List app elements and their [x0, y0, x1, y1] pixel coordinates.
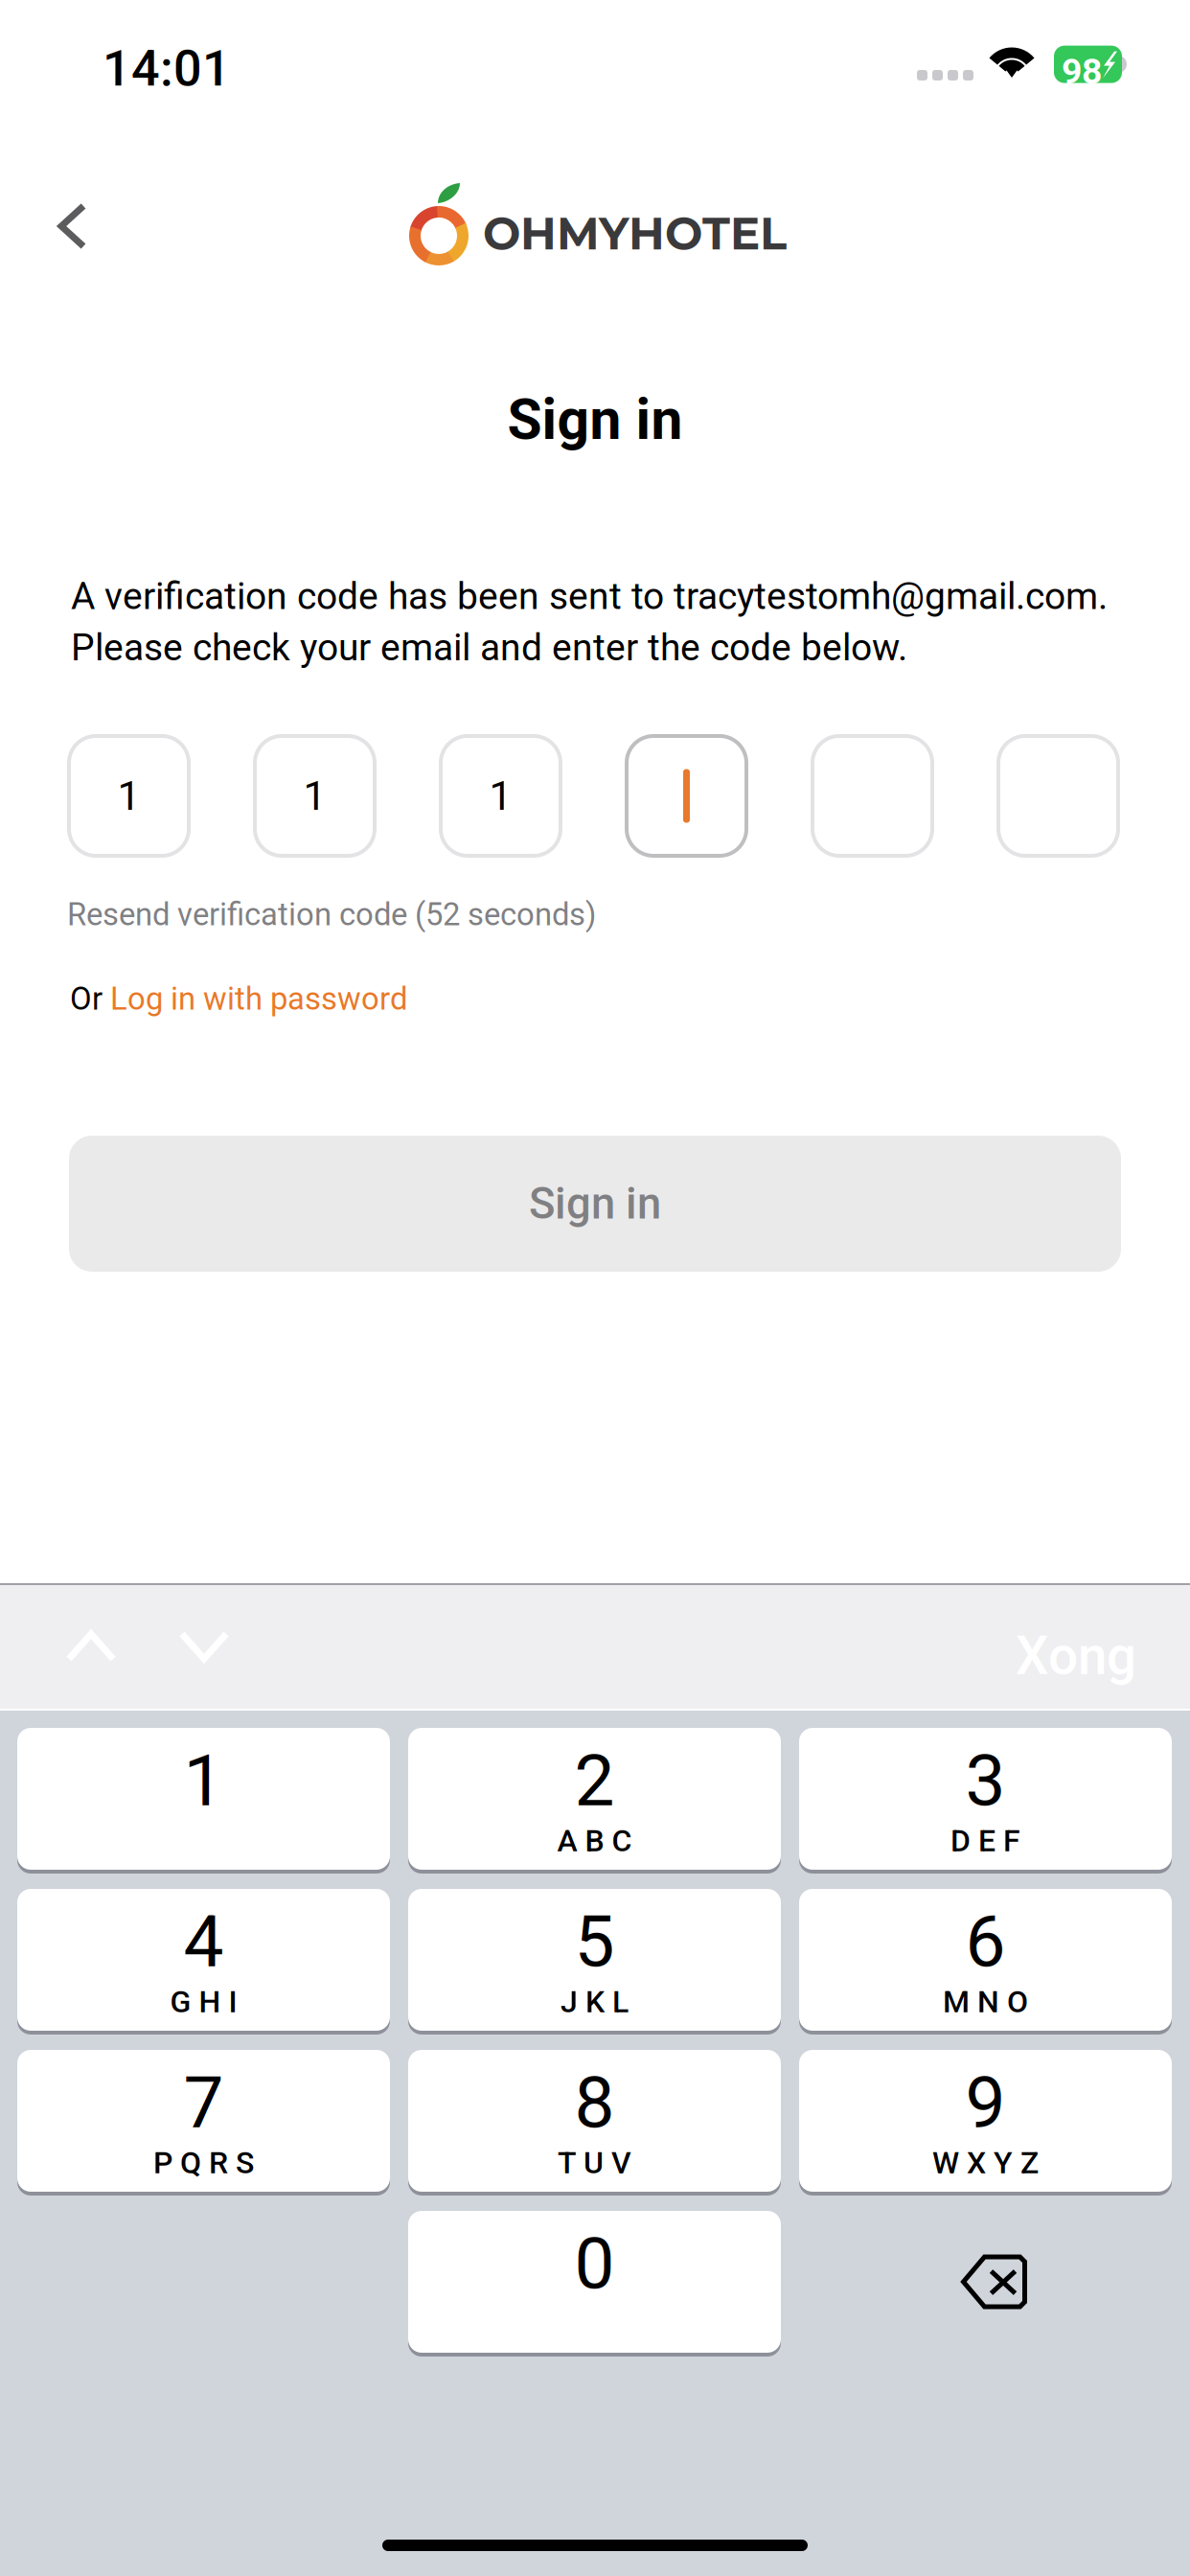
- button[interactable]: Delete: [961, 2254, 1028, 2310]
- staticText: W X Y Z: [932, 2145, 1039, 2181]
- staticText: 1: [489, 772, 512, 820]
- button[interactable]: Or: [70, 980, 407, 1017]
- button[interactable]: 3: [799, 1726, 1172, 1872]
- button[interactable]: Sign in: [69, 1136, 1121, 1272]
- staticText: 2: [574, 1739, 615, 1823]
- button[interactable]: 4: [17, 1887, 390, 2033]
- staticText: 1: [117, 772, 140, 820]
- button[interactable]: 0: [408, 2209, 781, 2355]
- staticText: T U V: [558, 2145, 631, 2181]
- staticText: 8: [574, 2061, 615, 2145]
- button[interactable]: 6: [799, 1887, 1172, 2033]
- staticText: Log in with password: [110, 980, 407, 1017]
- staticText: 14:01: [103, 39, 231, 98]
- button[interactable]: Resend verification code (52 seconds): [67, 896, 596, 933]
- button[interactable]: Previous field: [66, 1629, 116, 1664]
- staticText: J K L: [561, 1984, 629, 2020]
- staticText: 3: [965, 1739, 1006, 1823]
- staticText: D E F: [950, 1823, 1020, 1859]
- staticText: 1: [303, 772, 326, 820]
- button[interactable]: 8: [408, 2048, 781, 2194]
- staticText: 1: [183, 1739, 224, 1823]
- staticText: Resend verification code (52 seconds): [67, 896, 596, 933]
- button[interactable]: Next field: [179, 1629, 229, 1664]
- staticText: Please check your email and enter the co…: [71, 626, 907, 669]
- button[interactable]: 9: [799, 2048, 1172, 2194]
- staticText: 9: [965, 2061, 1006, 2145]
- staticText: Sign in: [529, 1178, 661, 1229]
- staticText: 5: [574, 1900, 615, 1984]
- button[interactable]: 1: [17, 1726, 390, 1872]
- staticText: 0: [574, 2222, 615, 2306]
- staticText: 6: [965, 1900, 1006, 1984]
- button[interactable]: 2: [408, 1726, 781, 1872]
- staticText: G H I: [170, 1984, 237, 2020]
- button[interactable]: Back: [20, 173, 126, 279]
- staticText: P Q R S: [153, 2145, 254, 2181]
- staticText: M N O: [943, 1984, 1028, 2020]
- staticText: 4: [183, 1900, 224, 1984]
- staticText: Or: [70, 980, 110, 1017]
- staticText: A verification code has been sent to tra…: [71, 574, 1108, 618]
- button[interactable]: Xong: [1016, 1625, 1136, 1687]
- staticText: OHMYHOTEL: [483, 206, 787, 261]
- staticText: 98: [1062, 50, 1102, 92]
- staticText: Xong: [1016, 1625, 1136, 1687]
- staticText: A B C: [557, 1823, 632, 1859]
- button[interactable]: 7: [17, 2048, 390, 2194]
- button[interactable]: 5: [408, 1887, 781, 2033]
- staticText: Sign in: [507, 387, 683, 453]
- staticText: 7: [183, 2061, 224, 2145]
